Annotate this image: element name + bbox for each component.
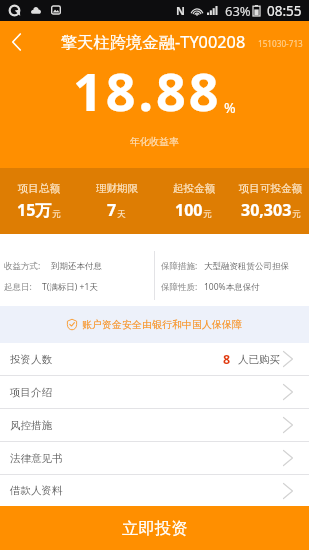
staticText: 立即投资 <box>122 518 188 539</box>
staticText: 投资人数 <box>10 353 52 366</box>
staticText: % <box>224 98 236 117</box>
staticText: 账户资金安全由银行和中国人保保障 <box>82 318 242 331</box>
staticText: 151030-713 <box>258 38 303 49</box>
staticText: 天 <box>117 209 126 220</box>
staticText: 法律意见书 <box>10 452 63 465</box>
staticText: 理财期限 <box>96 182 138 195</box>
staticText: 100%本息保付 <box>204 281 260 293</box>
button[interactable]: Back <box>0 21 33 62</box>
staticText: 08:55 <box>267 2 302 20</box>
staticText: 18.88 <box>73 55 222 126</box>
staticText: 7 <box>107 199 117 221</box>
button[interactable]: 项目介绍 <box>0 376 309 408</box>
staticText: 大型融资租赁公司担保 <box>204 261 289 272</box>
staticText: 年化收益率 <box>130 136 179 148</box>
button[interactable]: 投资人数 <box>0 343 309 375</box>
staticText: 擎天柱跨境金融-TY00208 <box>61 31 246 53</box>
staticText: 人已购买 <box>238 353 280 366</box>
staticText: 30,303 <box>241 199 292 221</box>
button[interactable]: 法律意见书 <box>0 442 309 474</box>
staticText: 风控措施 <box>10 419 52 432</box>
staticText: 元 <box>52 209 61 220</box>
staticText: 借款人资料 <box>10 484 63 497</box>
staticText: 项目介绍 <box>10 386 52 399</box>
staticText: 元 <box>203 209 212 220</box>
staticText: 收益方式: <box>4 260 41 272</box>
staticText: 项目总额 <box>18 182 60 195</box>
staticText: 63% <box>225 2 251 20</box>
staticText: 元 <box>292 209 301 220</box>
button[interactable]: 立即投资 <box>0 506 309 550</box>
staticText: N <box>176 3 185 18</box>
staticText: 保障性质: <box>161 281 198 293</box>
staticText: 到期还本付息 <box>51 261 102 272</box>
staticText: 起息日: <box>4 281 32 293</box>
button[interactable]: 借款人资料 <box>0 475 309 506</box>
staticText: T(满标日) +1天 <box>42 281 98 293</box>
staticText: 保障措施: <box>161 260 198 272</box>
button[interactable]: 风控措施 <box>0 409 309 441</box>
staticText: 100 <box>175 199 203 221</box>
staticText: 起投金额 <box>173 182 215 195</box>
staticText: 项目可投金额 <box>239 182 302 195</box>
staticText: 8 <box>223 351 231 368</box>
staticText: 15万 <box>17 199 52 221</box>
